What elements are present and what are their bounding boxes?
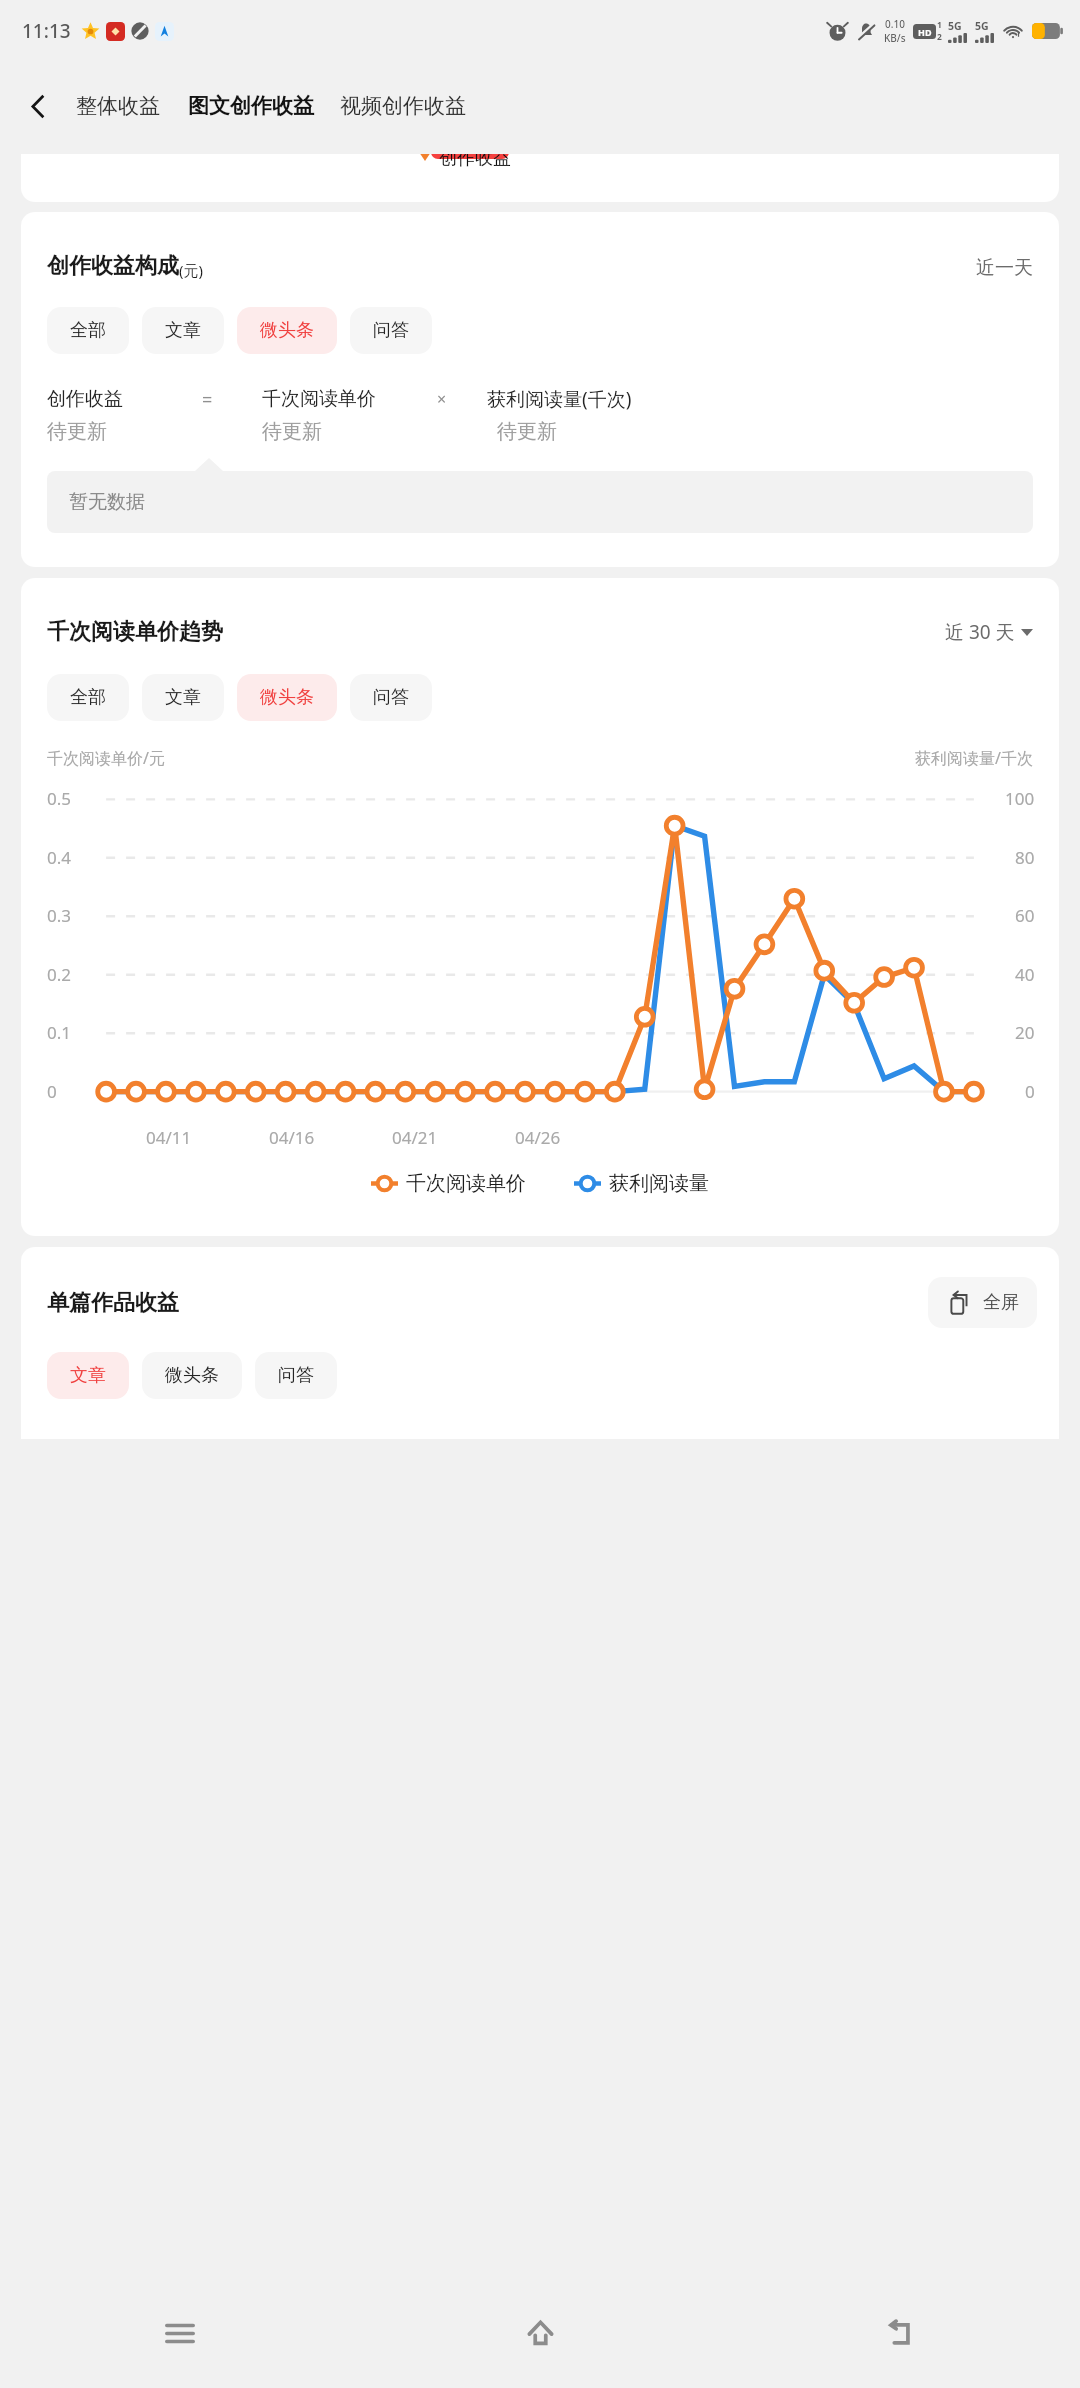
button[interactable]: 微头条 — [237, 307, 337, 354]
staticText: 11:13 — [22, 18, 71, 44]
staticText: 0.5 — [47, 787, 72, 810]
staticText: 千次阅读单价 — [262, 387, 376, 411]
button[interactable]: 千次阅读单价 — [371, 1171, 526, 1196]
staticText: 待更新 — [47, 419, 107, 444]
staticText: 04/16 — [269, 1126, 315, 1149]
staticText: 千次阅读单价 — [406, 1171, 526, 1196]
button[interactable]: 问答 — [350, 674, 432, 721]
staticText: 微头条 — [260, 686, 314, 709]
staticText: 80 — [1015, 846, 1035, 869]
staticText: 获利阅读量/千次 — [915, 747, 1033, 769]
staticText: 100 — [1005, 787, 1035, 810]
staticText: 待更新 — [497, 419, 557, 444]
staticText: 获利阅读量 — [609, 1171, 709, 1196]
staticText: 暂无数据 — [69, 490, 145, 514]
button[interactable]: 微头条 — [237, 674, 337, 721]
button[interactable]: 文章 — [142, 674, 224, 721]
staticText: 全部 — [70, 319, 106, 342]
button[interactable]: Back — [720, 2278, 1080, 2388]
staticText: 04/26 — [515, 1126, 561, 1149]
button[interactable]: 全屏 — [928, 1277, 1037, 1328]
staticText: 创作收益 — [47, 387, 123, 411]
button[interactable]: Back — [0, 62, 76, 150]
staticText: 千次阅读单价/元 — [47, 747, 165, 769]
staticText: 问答 — [278, 1364, 314, 1387]
staticText: 0 — [1025, 1080, 1035, 1103]
staticText: 2 — [937, 31, 942, 43]
staticText: 5G — [975, 19, 989, 33]
staticText: 文章 — [70, 1364, 106, 1387]
staticText: 问答 — [373, 319, 409, 342]
staticText: 20 — [1015, 1021, 1035, 1044]
staticText: 图文创作收益 — [188, 93, 314, 119]
staticText: HD — [918, 26, 932, 38]
button[interactable]: 近一天 — [976, 256, 1033, 280]
staticText: 待更新 — [262, 419, 322, 444]
staticText: KB/s — [884, 31, 906, 45]
staticText: 60 — [1015, 904, 1035, 927]
button[interactable]: 问答 — [255, 1352, 337, 1399]
button[interactable]: 近 30 天 — [945, 619, 1033, 645]
staticText: 千次阅读单价趋势 — [47, 618, 223, 646]
staticText: 0.10 — [885, 17, 905, 31]
staticText: 问答 — [373, 686, 409, 709]
staticText: 0.2 — [47, 963, 72, 986]
staticText: 创作收益构成 — [47, 252, 179, 280]
button[interactable]: 文章 — [47, 1352, 129, 1399]
button[interactable]: Recent apps — [0, 2278, 360, 2388]
button[interactable]: 获利阅读量 — [574, 1171, 709, 1196]
staticText: × — [437, 388, 447, 410]
staticText: 微头条 — [260, 319, 314, 342]
button[interactable]: 整体收益 — [76, 62, 160, 150]
staticText: 整体收益 — [76, 93, 160, 119]
button[interactable]: 图文创作收益 — [188, 62, 314, 150]
staticText: (元) — [179, 260, 204, 280]
button[interactable]: 全部 — [47, 674, 129, 721]
staticText: 40 — [1015, 963, 1035, 986]
staticText: 0 — [47, 1080, 57, 1103]
staticText: 微头条 — [165, 1364, 219, 1387]
staticText: 视频创作收益 — [340, 93, 466, 119]
staticText: 文章 — [165, 319, 201, 342]
button[interactable]: Home — [360, 2278, 720, 2388]
staticText: 0.1 — [47, 1021, 72, 1044]
button[interactable]: 视频创作收益 — [340, 62, 466, 150]
staticText: 04/21 — [392, 1126, 438, 1149]
staticText: 近一天 — [976, 256, 1033, 280]
staticText: 获利阅读量(千次) — [487, 386, 632, 412]
staticText: 近 30 天 — [945, 619, 1015, 645]
staticText: 0.4 — [47, 846, 72, 869]
staticText: 0.3 — [47, 904, 72, 927]
staticText: 文章 — [165, 686, 201, 709]
staticText: 1 — [937, 19, 942, 31]
button[interactable]: 问答 — [350, 307, 432, 354]
button[interactable]: 全部 — [47, 307, 129, 354]
staticText: 04/11 — [146, 1126, 192, 1149]
staticText: = — [202, 387, 213, 412]
button[interactable]: 文章 — [142, 307, 224, 354]
staticText: 5G — [948, 19, 962, 33]
button[interactable]: 微头条 — [142, 1352, 242, 1399]
staticText: 全屏 — [983, 1291, 1019, 1314]
staticText: 全部 — [70, 686, 106, 709]
staticText: 创作收益 — [439, 154, 511, 170]
staticText: 单篇作品收益 — [47, 1289, 179, 1317]
